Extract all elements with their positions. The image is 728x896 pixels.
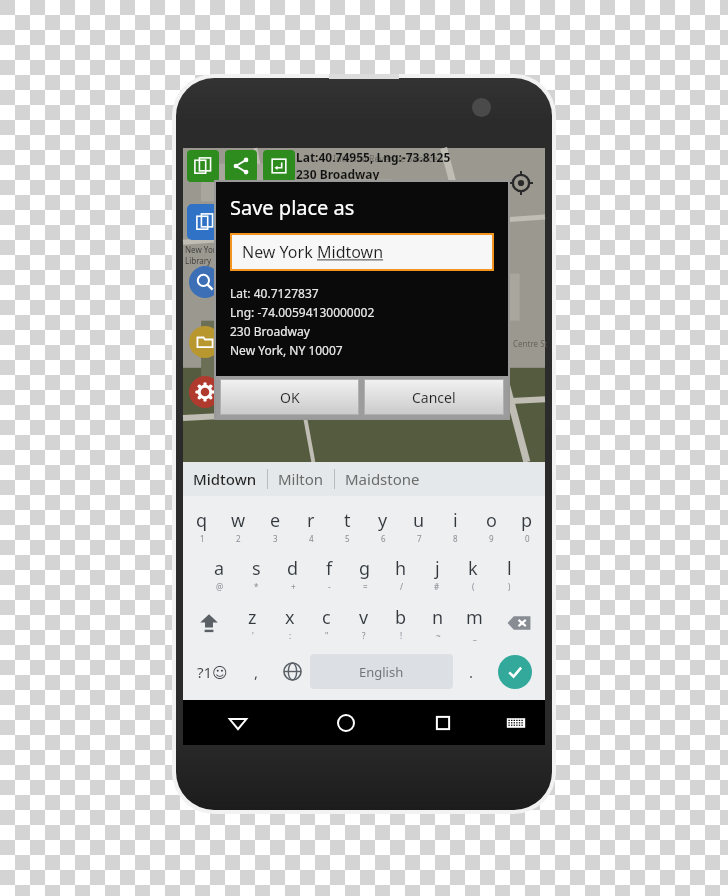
button[interactable]: w bbox=[220, 502, 257, 550]
button[interactable]: e bbox=[257, 502, 293, 550]
button[interactable]: Backspace bbox=[493, 598, 545, 647]
staticText: - bbox=[328, 581, 331, 592]
button[interactable]: Settings bbox=[189, 376, 221, 408]
button[interactable]: ?1☺ bbox=[187, 647, 238, 696]
staticText: f bbox=[326, 556, 333, 581]
staticText: n bbox=[432, 605, 444, 630]
button[interactable]: Maidstone bbox=[345, 469, 420, 489]
staticText: " bbox=[325, 630, 329, 641]
staticText: 9 bbox=[489, 533, 494, 544]
button[interactable]: l bbox=[491, 550, 527, 598]
button[interactable]: Milton bbox=[278, 469, 324, 489]
staticText: ) bbox=[508, 581, 511, 592]
staticText: 8 bbox=[453, 533, 458, 544]
staticText: m bbox=[466, 605, 483, 630]
staticText: ~ bbox=[436, 630, 441, 641]
button[interactable]: Undo bbox=[263, 150, 295, 182]
button[interactable]: Switch keyboard bbox=[486, 700, 545, 745]
button[interactable]: z bbox=[234, 598, 271, 647]
staticText: w bbox=[231, 508, 246, 533]
staticText: Midtown bbox=[193, 469, 257, 489]
staticText: Milton bbox=[278, 469, 324, 489]
staticText: r bbox=[307, 508, 315, 533]
button[interactable]: Back bbox=[183, 700, 292, 745]
button[interactable]: , bbox=[238, 647, 274, 696]
button[interactable]: n bbox=[419, 598, 456, 647]
staticText: Lng: -74.00594130000002 bbox=[230, 304, 375, 320]
button[interactable]: u bbox=[401, 502, 437, 550]
staticText: @ bbox=[216, 581, 224, 592]
button[interactable]: Shift bbox=[183, 598, 234, 647]
staticText: / bbox=[400, 581, 403, 592]
staticText: 230 Broadway bbox=[296, 166, 380, 182]
button[interactable]: v bbox=[345, 598, 382, 647]
button[interactable]: s bbox=[238, 550, 275, 598]
staticText: English bbox=[359, 663, 404, 681]
button[interactable]: f bbox=[311, 550, 347, 598]
button[interactable]: g bbox=[347, 550, 383, 598]
button[interactable]: Change language bbox=[274, 647, 310, 696]
staticText: ? bbox=[362, 630, 366, 641]
staticText: 1 bbox=[200, 533, 205, 544]
button[interactable]: . bbox=[453, 647, 489, 696]
button[interactable]: i bbox=[437, 502, 473, 550]
button[interactable]: Home bbox=[292, 700, 400, 745]
staticText: Midtown bbox=[317, 241, 384, 263]
staticText: ?1☺ bbox=[197, 662, 228, 682]
staticText: i bbox=[453, 508, 458, 533]
button[interactable]: j bbox=[419, 550, 455, 598]
button[interactable]: r bbox=[293, 502, 329, 550]
staticText: e bbox=[270, 508, 281, 533]
staticText: b bbox=[395, 605, 407, 630]
button[interactable]: Midtown bbox=[193, 469, 257, 489]
staticText: Save place as bbox=[230, 194, 355, 221]
staticText: o bbox=[486, 508, 497, 533]
staticText: New York, NY 10007 bbox=[230, 342, 343, 358]
button[interactable]: h bbox=[383, 550, 419, 598]
button[interactable]: Copy bbox=[187, 150, 219, 182]
button[interactable]: Folder bbox=[189, 326, 221, 358]
button[interactable]: y bbox=[365, 502, 401, 550]
button[interactable]: x bbox=[271, 598, 308, 647]
button[interactable]: k bbox=[455, 550, 491, 598]
staticText: Cancel bbox=[412, 388, 456, 407]
staticText: k bbox=[468, 556, 478, 581]
button[interactable]: b bbox=[382, 598, 419, 647]
staticText: 0 bbox=[525, 533, 530, 544]
button[interactable]: OK bbox=[220, 379, 359, 415]
button[interactable]: m bbox=[456, 598, 493, 647]
button[interactable]: Share bbox=[225, 150, 257, 182]
button[interactable]: a bbox=[201, 550, 238, 598]
staticText: q bbox=[196, 508, 208, 533]
staticText: , bbox=[254, 662, 259, 682]
staticText: Lat: 40.7127837 bbox=[230, 285, 319, 301]
button[interactable]: New York bbox=[232, 235, 492, 269]
button[interactable]: o bbox=[473, 502, 509, 550]
button[interactable]: My location bbox=[508, 170, 534, 196]
button[interactable]: q bbox=[183, 502, 220, 550]
staticText: New York bbox=[242, 241, 317, 263]
button[interactable]: Copy layers bbox=[187, 204, 223, 240]
staticText: 230 Broadway bbox=[230, 323, 310, 339]
button[interactable]: d bbox=[275, 550, 311, 598]
button[interactable]: English bbox=[310, 654, 453, 689]
staticText: h bbox=[395, 556, 407, 581]
staticText: 7 bbox=[417, 533, 422, 544]
staticText: : bbox=[289, 630, 292, 641]
button[interactable]: Enter bbox=[498, 655, 532, 689]
button[interactable]: Recents bbox=[400, 700, 486, 745]
staticText: OK bbox=[280, 388, 300, 407]
staticText: g bbox=[359, 556, 371, 581]
button[interactable]: c bbox=[308, 598, 345, 647]
button[interactable]: t bbox=[329, 502, 365, 550]
staticText: 6 bbox=[381, 533, 386, 544]
staticText: = bbox=[363, 581, 368, 592]
button[interactable]: p bbox=[509, 502, 545, 550]
staticText: y bbox=[378, 508, 388, 533]
staticText: t bbox=[344, 508, 351, 533]
button[interactable]: Search bbox=[189, 266, 221, 298]
staticText: # bbox=[434, 581, 440, 592]
button[interactable]: Cancel bbox=[364, 379, 504, 415]
staticText: u bbox=[413, 508, 425, 533]
